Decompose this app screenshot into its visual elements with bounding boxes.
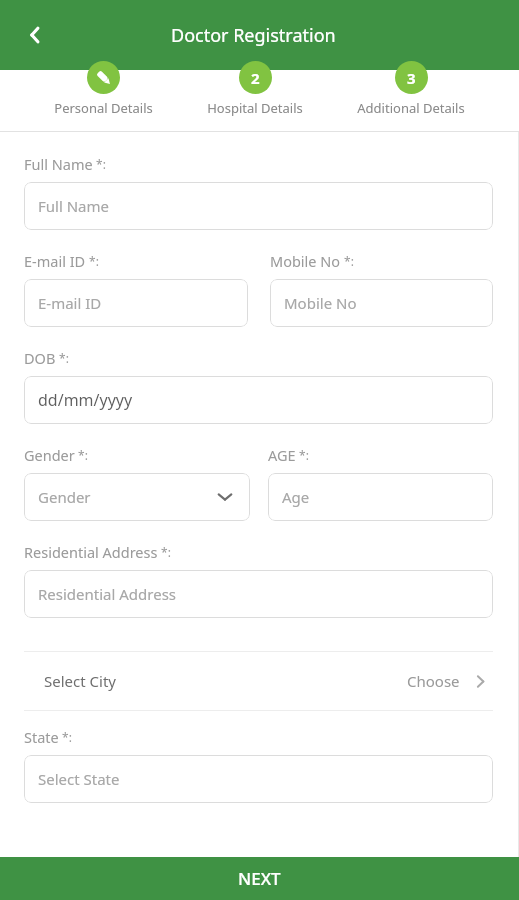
staticText: Full Name xyxy=(38,196,109,216)
staticText: Select State xyxy=(38,769,120,789)
staticText: Hospital Details xyxy=(207,99,303,117)
staticText: Mobile No xyxy=(284,293,357,313)
staticText: *: xyxy=(93,156,106,172)
staticText: *: xyxy=(75,447,88,463)
staticText: Age xyxy=(282,487,310,507)
staticText: Gender xyxy=(38,487,91,507)
staticText: *: xyxy=(296,447,309,463)
staticText: AGE xyxy=(268,445,296,465)
staticText: dd/mm/yyyy xyxy=(38,389,133,411)
staticText: Personal Details xyxy=(54,99,153,117)
staticText: E-mail ID xyxy=(24,251,86,271)
staticText: Gender xyxy=(24,445,75,465)
staticText: 2 xyxy=(251,68,260,88)
button[interactable]: Select City xyxy=(0,652,519,710)
button[interactable]: Personal Details xyxy=(54,61,153,117)
staticText: *: xyxy=(59,729,72,745)
staticText: Additional Details xyxy=(357,99,465,117)
button[interactable]: Age xyxy=(268,473,493,521)
staticText: E-mail ID xyxy=(38,293,102,313)
button[interactable]: dd/mm/yyyy xyxy=(24,376,493,424)
button[interactable]: Back xyxy=(14,14,56,56)
button[interactable]: NEXT xyxy=(0,857,519,900)
button[interactable]: 2 xyxy=(207,61,303,117)
staticText: Select City xyxy=(44,671,116,691)
button[interactable]: Mobile No xyxy=(270,279,493,327)
button[interactable]: Select State xyxy=(24,755,493,803)
staticText: Residential Address xyxy=(38,584,177,604)
staticText: DOB xyxy=(24,348,56,368)
staticText: Full Name xyxy=(24,154,93,174)
staticText: Doctor Registration xyxy=(171,23,336,48)
button[interactable]: Gender xyxy=(24,473,250,521)
staticText: Mobile No xyxy=(270,251,341,271)
staticText: *: xyxy=(158,544,171,560)
staticText: *: xyxy=(341,253,354,269)
staticText: 3 xyxy=(407,68,416,88)
button[interactable]: Residential Address xyxy=(24,570,493,618)
button[interactable]: Full Name xyxy=(24,182,493,230)
staticText: NEXT xyxy=(238,867,281,890)
staticText: *: xyxy=(86,253,99,269)
button[interactable]: 3 xyxy=(357,61,465,117)
staticText: State xyxy=(24,727,59,747)
button[interactable]: E-mail ID xyxy=(24,279,248,327)
staticText: Residential Address xyxy=(24,542,158,562)
staticText: *: xyxy=(56,350,69,366)
staticText: Choose xyxy=(407,671,460,691)
